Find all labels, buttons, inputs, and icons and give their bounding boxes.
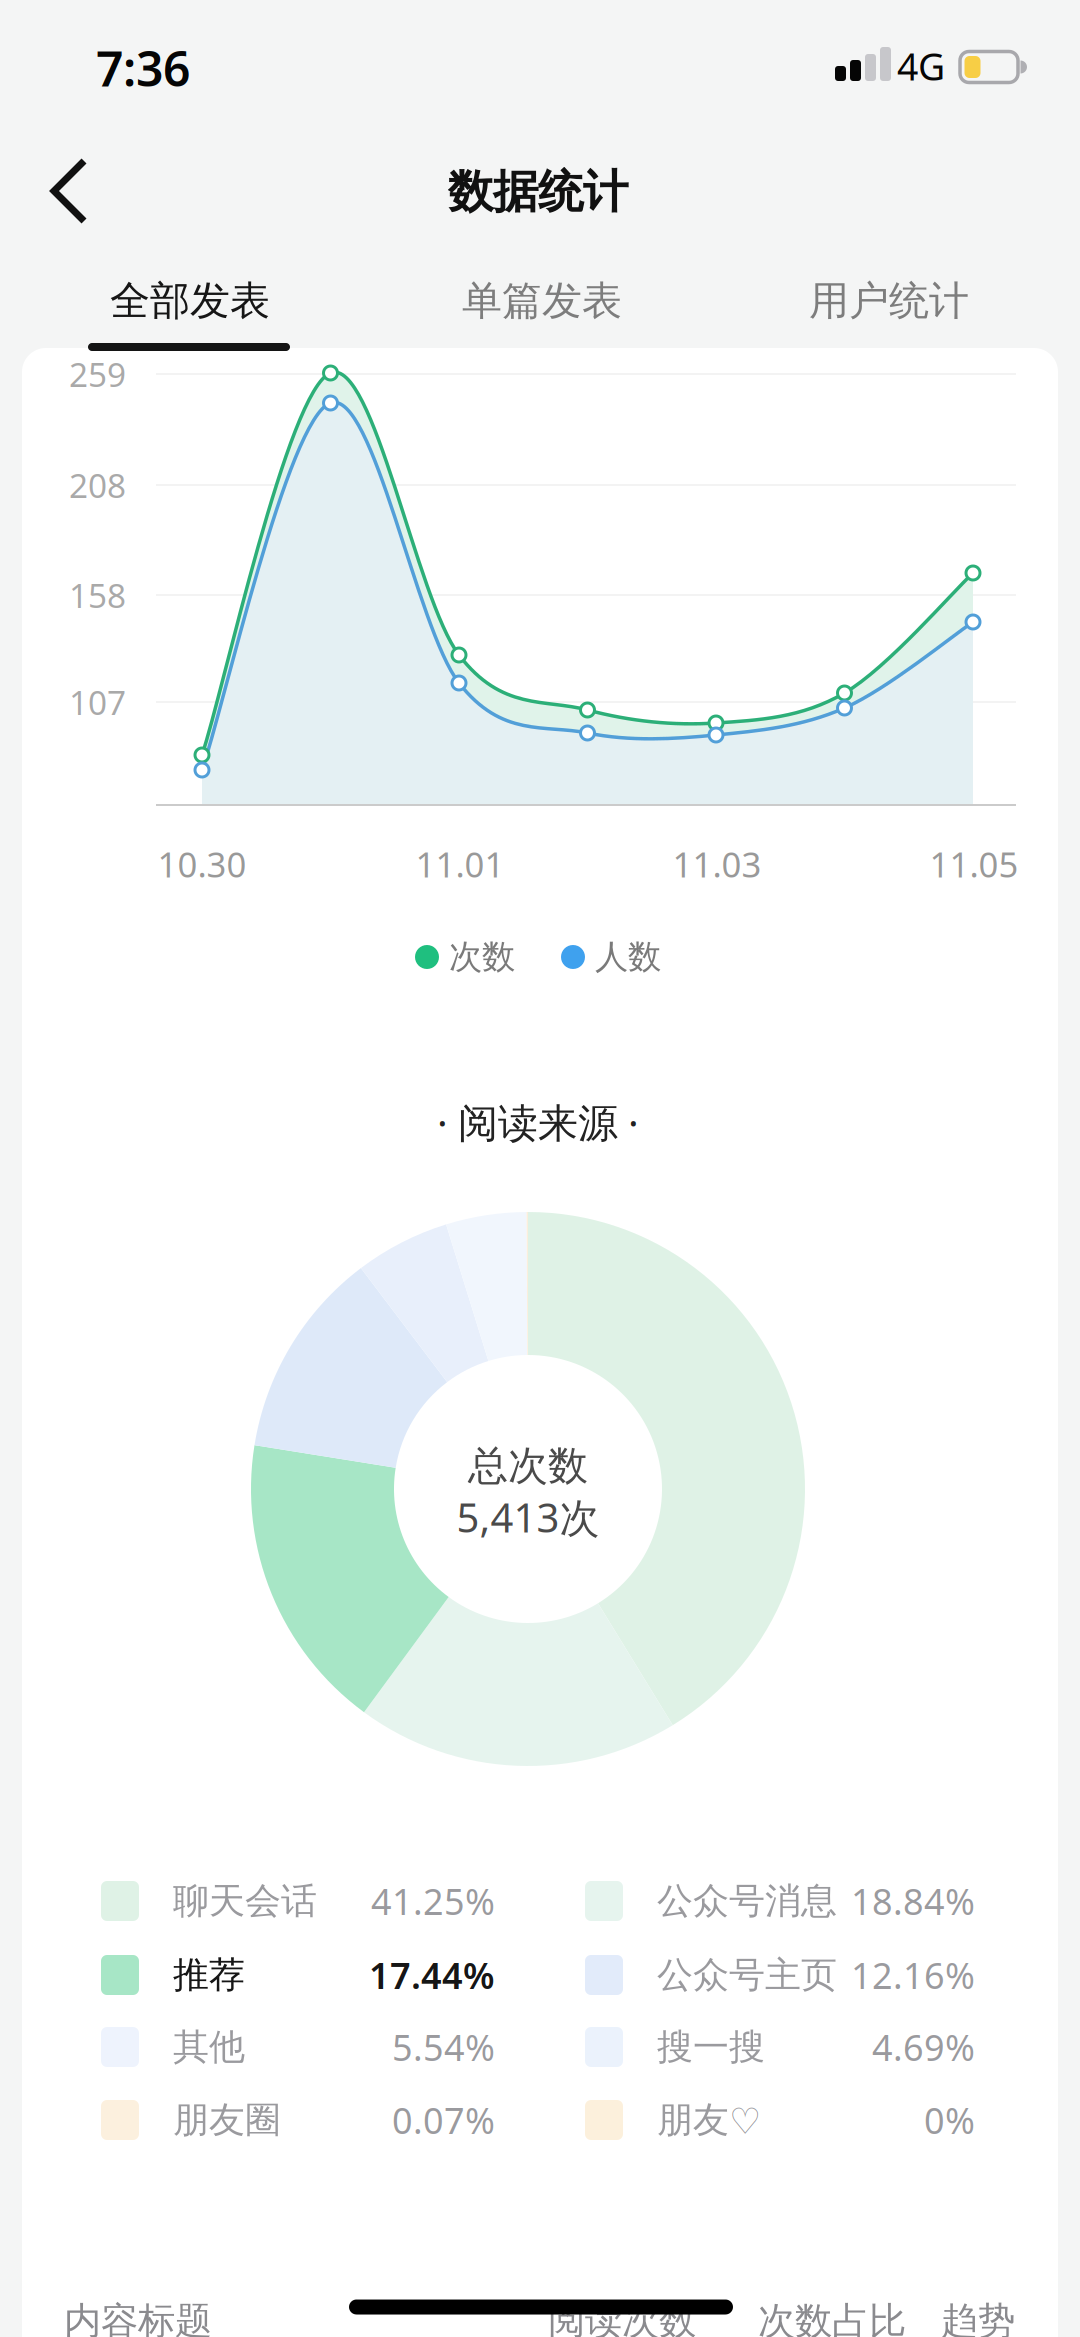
staticText: 158 [69, 573, 126, 617]
staticText: 0% [924, 2096, 975, 2144]
staticText: 12.16% [851, 1951, 975, 1999]
staticText: 11.03 [672, 841, 761, 887]
staticText: 259 [69, 352, 126, 396]
button[interactable]: 朋友♡ [585, 2084, 975, 2156]
staticText: 趋势 [941, 2298, 1015, 2337]
staticText: 朋友圈 [173, 2098, 281, 2142]
button[interactable]: 推荐 [101, 1939, 495, 2011]
button[interactable]: 朋友圈 [101, 2084, 495, 2156]
staticText: 41.25% [371, 1877, 495, 1925]
staticText: 其他 [173, 2025, 245, 2069]
staticText: 公众号消息 [657, 1879, 837, 1923]
staticText: 内容标题 [64, 2298, 212, 2337]
staticText: 10.30 [157, 841, 246, 887]
button[interactable]: 全部发表 [55, 256, 325, 346]
staticText: 5,413次 [456, 1490, 599, 1543]
staticText: 朋友♡ [657, 2098, 761, 2142]
staticText: 搜一搜 [657, 2025, 765, 2069]
button[interactable]: 其他 [101, 2011, 495, 2083]
staticText: 阅读次数 [548, 2298, 696, 2337]
staticText: 11.01 [415, 841, 504, 887]
staticText: 全部发表 [110, 276, 270, 325]
staticText: 数据统计 [448, 164, 628, 220]
staticText: 18.84% [851, 1877, 975, 1925]
staticText: 公众号主页 [657, 1953, 837, 1997]
button[interactable]: 公众号消息 [585, 1865, 975, 1937]
staticText: 次数占比 [758, 2298, 906, 2337]
staticText: 用户统计 [809, 276, 969, 325]
staticText: 5.54% [392, 2023, 495, 2071]
staticText: 4.69% [872, 2023, 975, 2071]
staticText: 次数 [449, 936, 515, 977]
button[interactable]: 公众号主页 [585, 1939, 975, 2011]
staticText: 人数 [595, 936, 661, 977]
staticText: 11.05 [929, 841, 1018, 887]
button[interactable]: 阅读次数 [527, 2293, 717, 2337]
button[interactable]: 搜一搜 [585, 2011, 975, 2083]
staticText: 0.07% [392, 2096, 495, 2144]
staticText: 7:36 [96, 36, 190, 100]
staticText: 推荐 [173, 1953, 245, 1997]
staticText: 107 [69, 680, 126, 724]
staticText: 单篇发表 [462, 276, 622, 325]
button[interactable]: 单篇发表 [407, 256, 677, 346]
staticText: 208 [69, 463, 126, 507]
button[interactable]: 返回 [32, 147, 112, 235]
button[interactable]: 趋势 [923, 2293, 1033, 2337]
staticText: 总次数 [468, 1441, 588, 1490]
button[interactable]: 次数占比 [737, 2293, 927, 2337]
staticText: 4G [897, 41, 945, 91]
button[interactable]: 用户统计 [754, 256, 1024, 346]
staticText: · 阅读来源 · [437, 1095, 639, 1148]
button[interactable]: 聊天会话 [101, 1865, 495, 1937]
staticText: 17.44% [369, 1951, 495, 1999]
staticText: 聊天会话 [173, 1879, 317, 1923]
